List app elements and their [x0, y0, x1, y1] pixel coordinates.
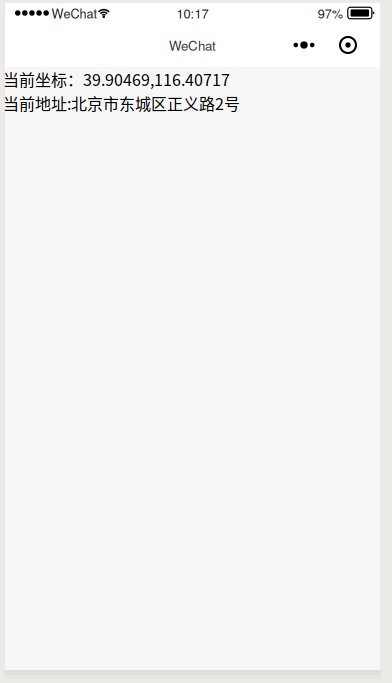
- staticText: WeChat: [169, 35, 216, 55]
- staticText: 当前地址:北京市东城区正义路2号: [3, 91, 240, 115]
- staticText: 10:17: [176, 4, 208, 22]
- staticText: 当前坐标：39.90469,116.40717: [3, 67, 230, 91]
- button[interactable]: Close mini program: [333, 27, 363, 63]
- button[interactable]: More options: [275, 27, 333, 63]
- staticText: WeChat: [51, 4, 97, 22]
- staticText: 97%: [318, 4, 343, 22]
